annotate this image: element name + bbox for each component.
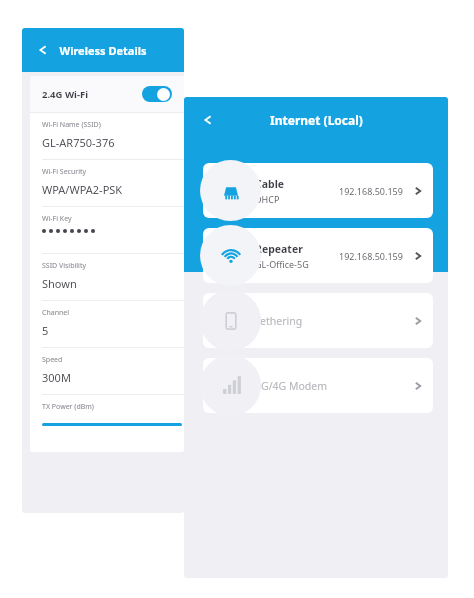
button[interactable]: Speed (30, 348, 184, 394)
staticText: Wireless Details (59, 43, 147, 58)
staticText: 192.168.50.159 (339, 250, 403, 262)
button[interactable]: Cable (203, 163, 433, 218)
button[interactable]: TX Power (dBm) (30, 395, 184, 426)
staticText: DHCP (255, 193, 280, 205)
button[interactable]: Channel (30, 301, 184, 347)
button[interactable]: Wi-Fi toggle (142, 86, 172, 102)
button[interactable]: Wi-Fi Key (30, 207, 184, 253)
button[interactable]: 2.4G Wi-Fi (30, 76, 184, 112)
staticText: WPA/WPA2-PSK (42, 182, 123, 197)
button[interactable]: Tethering (203, 293, 433, 348)
staticText: Channel (42, 308, 70, 318)
staticText: 192.168.50.159 (339, 185, 403, 197)
button[interactable]: Repeater (203, 228, 433, 283)
staticText: SSID Visibility (42, 261, 86, 271)
staticText: 5 (42, 323, 49, 338)
staticText: TX Power (dBm) (42, 402, 94, 412)
staticText: 2.4G Wi-Fi (42, 88, 89, 101)
staticText: Speed (42, 355, 63, 365)
staticText: GL-Office-5G (255, 258, 309, 270)
staticText: Cable (255, 177, 285, 191)
staticText: 300M (42, 370, 71, 385)
staticText: GL-AR750-376 (42, 135, 115, 150)
staticText: Wi-Fi Security (42, 167, 87, 177)
staticText: Wi-Fi Name (SSID) (42, 120, 101, 130)
staticText: Repeater (255, 242, 303, 256)
button[interactable]: 3G/4G Modem (203, 358, 433, 413)
button[interactable]: SSID Visibility (30, 254, 184, 300)
button[interactable]: Wi-Fi Name (SSID) (30, 113, 184, 159)
staticText: Tethering (255, 314, 303, 328)
button[interactable]: Wi-Fi Security (30, 160, 184, 206)
staticText: Shown (42, 276, 77, 291)
staticText: Internet (Local) (270, 112, 363, 128)
button[interactable]: Back (30, 37, 56, 63)
staticText: Wi-Fi Key (42, 214, 72, 224)
button[interactable]: Back (195, 107, 221, 133)
staticText: 3G/4G Modem (255, 379, 328, 393)
